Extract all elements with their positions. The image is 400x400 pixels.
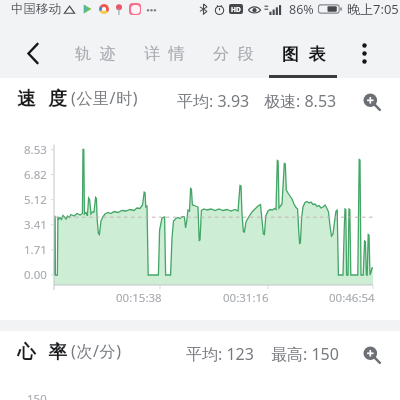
staticText: 150: [27, 391, 47, 400]
staticText: HD: [231, 5, 241, 14]
staticText: 3.41: [24, 217, 47, 233]
button[interactable]: More options: [350, 39, 378, 67]
button[interactable]: 轨 迹: [62, 27, 131, 78]
staticText: 1.71: [24, 242, 47, 258]
staticText: 00:31:16: [223, 290, 269, 306]
staticText: 平均: 3.93: [177, 90, 250, 112]
staticText: 平均: 123: [186, 343, 254, 365]
button[interactable]: Zoom in: [360, 87, 382, 115]
staticText: 分 段: [213, 42, 256, 64]
staticText: 心 率: [17, 338, 71, 363]
staticText: 图 表: [282, 42, 328, 65]
staticText: 00:46:54: [329, 290, 375, 306]
button[interactable]: Back: [17, 37, 49, 69]
staticText: 详 情: [144, 42, 187, 64]
staticText: 8.53: [24, 142, 47, 158]
staticText: 最高: 150: [271, 343, 339, 365]
staticText: (公里/时): [71, 87, 139, 109]
button[interactable]: 图 表: [270, 27, 339, 78]
staticText: 轨 迹: [75, 42, 118, 64]
staticText: 6.82: [24, 167, 47, 183]
button[interactable]: Zoom in: [360, 340, 382, 368]
staticText: 5.12: [24, 192, 47, 208]
staticText: 0.00: [24, 267, 47, 283]
staticText: 00:15:38: [116, 290, 162, 306]
staticText: (次/分): [71, 340, 122, 362]
staticText: 极速: 8.53: [264, 90, 337, 112]
button[interactable]: 分 段: [200, 27, 269, 78]
staticText: 晚上7:05: [347, 0, 399, 18]
staticText: 86%: [289, 1, 314, 18]
staticText: 速 度: [17, 85, 71, 110]
staticText: 中国移动: [11, 1, 61, 17]
button[interactable]: 详 情: [131, 27, 200, 78]
